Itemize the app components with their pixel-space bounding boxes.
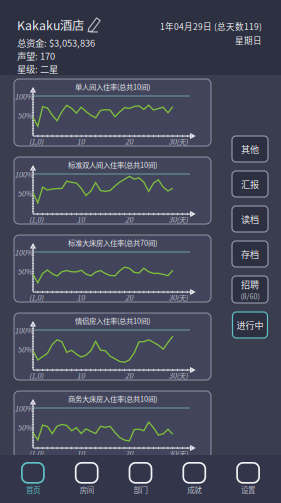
staticText: Kakaku酒店 [17,16,84,34]
button[interactable]: 汇报 [232,171,268,197]
staticText: 首页 [26,484,40,495]
button[interactable]: 设置 [221,455,275,503]
staticText: 20 [125,214,133,225]
staticText: 100% [14,247,33,258]
staticText: 20 [125,136,133,147]
staticText: 30(天) [169,370,188,381]
staticText: 进行中 [236,318,263,331]
staticText: 100% [14,169,33,180]
staticText: 20 [125,292,133,303]
button[interactable]: 存档 [232,241,268,267]
staticText: 标准大床房入住率(总共70间) [68,237,157,248]
staticText: 30(天) [169,136,188,147]
staticText: 10 [77,292,85,303]
button[interactable]: 进行中 [232,312,267,338]
staticText: 房间 [80,484,94,495]
button[interactable]: 重命名 [88,16,101,33]
staticText: (8/60) [240,291,259,301]
staticText: 商务大床房入住率(总共10间) [68,393,157,404]
staticText: 成就 [187,484,201,495]
staticText: 30(天) [169,448,188,459]
staticText: 总资金: $3,053,836 [17,36,95,49]
staticText: 星级: 二星 [17,62,58,75]
staticText: 情侣房入住率(总共10间) [75,315,150,326]
staticText: 30(天) [169,292,188,303]
staticText: 存档 [241,247,259,260]
staticText: 50% [17,110,32,121]
staticText: 1年04月29日 (总天数119) [160,20,262,32]
staticText: 100% [14,325,33,336]
staticText: 50% [17,344,32,355]
staticText: 单人间入住率(总共10间) [75,81,150,92]
button[interactable]: 招聘 [232,276,268,303]
staticText: 50% [17,188,32,199]
staticText: 10 [77,370,85,381]
staticText: 30(天) [169,214,188,225]
staticText: 读档 [241,212,259,225]
staticText: (1,0) [29,370,43,381]
staticText: 10 [77,214,85,225]
staticText: 50% [17,422,32,433]
staticText: 汇报 [241,177,259,190]
button[interactable]: 房间 [60,455,114,503]
staticText: 招聘 [241,278,259,291]
staticText: 50% [17,266,32,277]
staticText: (1,0) [29,214,43,225]
staticText: (1,0) [29,448,43,459]
button[interactable]: 其他 [232,136,268,162]
staticText: (1,0) [29,292,43,303]
button[interactable]: 成就 [167,455,221,503]
staticText: 10 [77,136,85,147]
staticText: 声望: 170 [17,49,55,62]
staticText: 20 [125,448,133,459]
staticText: 星期日 [235,34,262,46]
button[interactable]: 首页 [6,455,60,503]
staticText: 部门 [133,484,147,495]
staticText: 20 [125,370,133,381]
staticText: 100% [14,403,33,414]
staticText: 其他 [241,142,259,155]
staticText: 设置 [241,484,255,495]
staticText: 标准双人间入住率(总共10间) [68,159,157,170]
button[interactable]: 读档 [232,206,268,232]
staticText: 100% [14,91,33,102]
button[interactable]: 部门 [114,455,167,503]
staticText: 10 [77,448,85,459]
staticText: (1,0) [29,136,43,147]
